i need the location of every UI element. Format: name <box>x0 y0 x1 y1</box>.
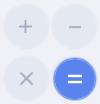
button[interactable]: Equals <box>49 53 100 104</box>
button[interactable]: Add <box>1 1 52 52</box>
button[interactable]: Clear <box>1 53 52 104</box>
button[interactable]: Subtract <box>49 1 100 52</box>
